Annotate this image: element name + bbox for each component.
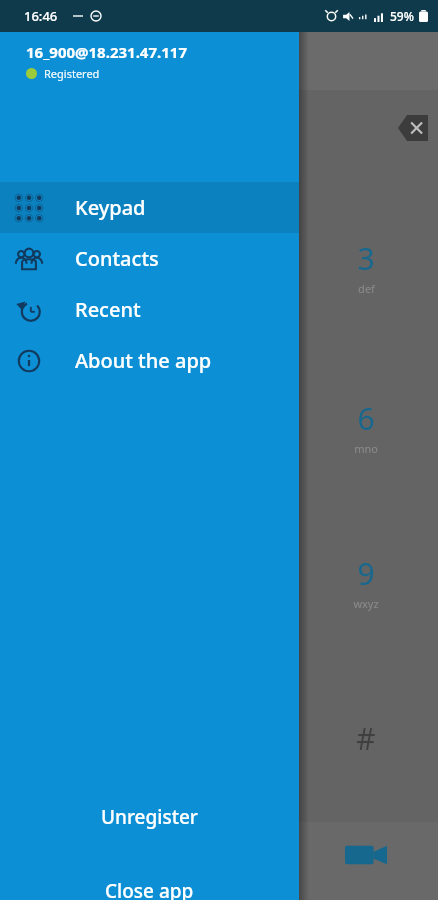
staticText: #: [356, 718, 376, 758]
button[interactable]: Keypad: [0, 182, 299, 233]
staticText: 6: [357, 398, 375, 439]
staticText: Recent: [75, 296, 141, 323]
button[interactable]: 9: [336, 553, 396, 611]
staticText: Keypad: [75, 194, 146, 221]
staticText: Registered: [44, 66, 100, 81]
button[interactable]: Video call: [345, 840, 387, 870]
button[interactable]: 6: [336, 398, 396, 456]
staticText: 16_900@18.231.47.117: [26, 42, 187, 62]
staticText: Close app: [105, 878, 194, 900]
staticText: Unregister: [101, 804, 198, 830]
button[interactable]: Contacts: [0, 233, 299, 284]
button[interactable]: Close app: [0, 854, 299, 900]
button[interactable]: About the app: [0, 335, 299, 386]
staticText: mno: [354, 441, 378, 456]
staticText: 16:46: [24, 7, 58, 25]
staticText: 9: [357, 553, 375, 594]
button[interactable]: #: [336, 718, 396, 758]
staticText: 59%: [390, 8, 414, 24]
button[interactable]: 3: [336, 238, 396, 296]
staticText: About the app: [75, 347, 212, 374]
button[interactable]: Unregister: [0, 780, 299, 854]
staticText: wxyz: [353, 596, 379, 611]
staticText: 3: [357, 238, 375, 279]
button[interactable]: Backspace: [398, 115, 428, 141]
button[interactable]: Recent: [0, 284, 299, 335]
staticText: Contacts: [75, 245, 159, 272]
staticText: def: [358, 281, 375, 296]
